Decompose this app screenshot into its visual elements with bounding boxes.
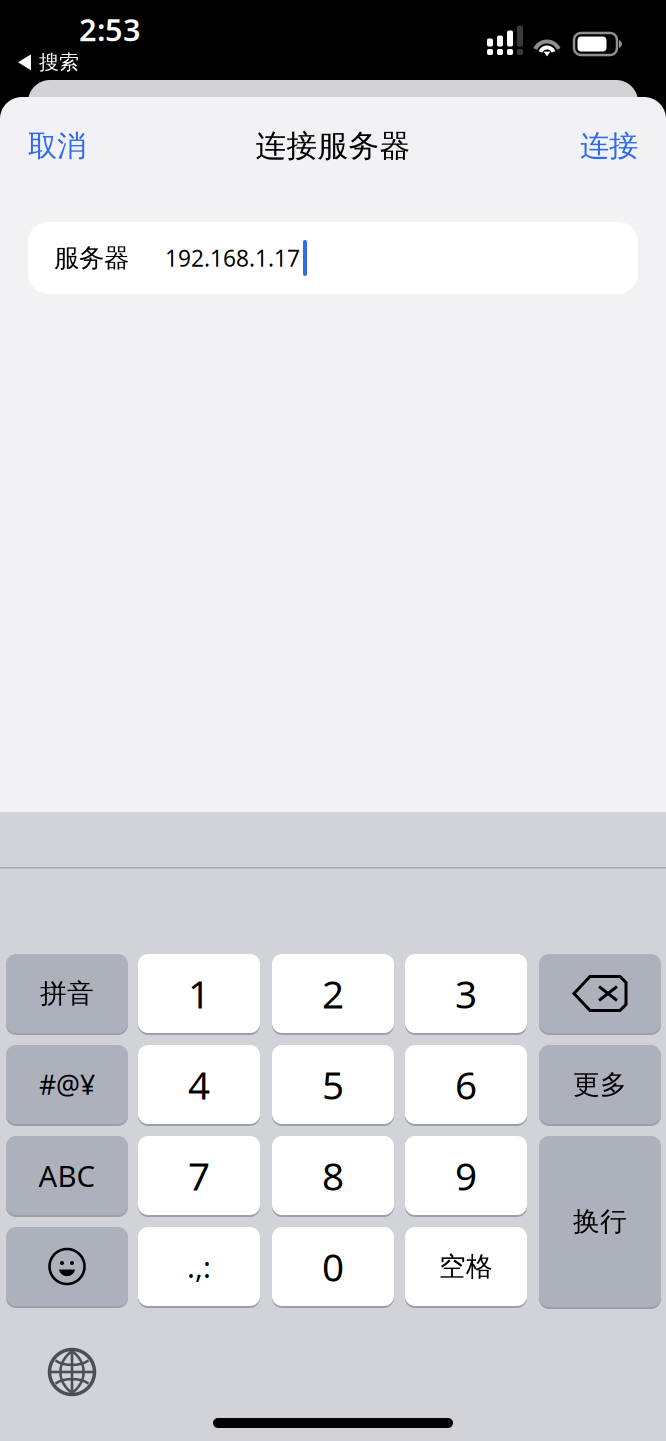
button[interactable]: 7 — [138, 1136, 260, 1217]
button[interactable]: 9 — [405, 1136, 527, 1217]
staticText: .,: — [187, 1247, 211, 1286]
button[interactable]: 空格 — [405, 1227, 527, 1308]
staticText: 0 — [322, 1241, 344, 1292]
button[interactable]: 拼音 — [6, 954, 128, 1035]
staticText: 连接服务器 — [255, 127, 410, 165]
staticText: 9 — [455, 1150, 477, 1201]
button[interactable]: 0 — [272, 1227, 394, 1308]
staticText: 搜索 — [39, 50, 79, 75]
staticText: ABC — [38, 1156, 95, 1195]
button[interactable]: 5 — [272, 1045, 394, 1126]
staticText: 192.168.1.17 — [165, 243, 300, 273]
staticText: 2 — [322, 968, 344, 1019]
staticText: 1 — [188, 968, 210, 1019]
staticText: 空格 — [439, 1250, 493, 1283]
button[interactable]: 8 — [272, 1136, 394, 1217]
button[interactable]: 取消 — [0, 109, 138, 183]
staticText: 4 — [188, 1059, 210, 1110]
button[interactable]: 换行 — [539, 1136, 661, 1309]
staticText: 7 — [188, 1150, 210, 1201]
staticText: 8 — [322, 1150, 344, 1201]
button[interactable]: 6 — [405, 1045, 527, 1126]
button[interactable]: Switch keyboard — [22, 1322, 122, 1422]
button[interactable]: 4 — [138, 1045, 260, 1126]
staticText: 服务器 — [54, 242, 129, 273]
button[interactable]: #@¥ — [6, 1045, 128, 1126]
staticText: 2:53 — [79, 9, 141, 50]
button[interactable]: Delete — [539, 954, 661, 1035]
button[interactable]: 1 — [138, 954, 260, 1035]
button[interactable]: .,: — [138, 1227, 260, 1308]
staticText: 换行 — [573, 1205, 627, 1238]
staticText: 5 — [322, 1059, 344, 1110]
staticText: 连接 — [580, 128, 638, 164]
staticText: 更多 — [573, 1068, 627, 1101]
staticText: 6 — [455, 1059, 477, 1110]
staticText: 3 — [455, 968, 477, 1019]
button[interactable]: 2 — [272, 954, 394, 1035]
button[interactable]: 连接 — [528, 109, 666, 183]
staticText: 取消 — [28, 128, 86, 164]
staticText: #@¥ — [39, 1067, 95, 1102]
button[interactable]: 更多 — [539, 1045, 661, 1126]
staticText: 拼音 — [40, 977, 94, 1010]
button[interactable]: ABC — [6, 1136, 128, 1217]
button[interactable]: 3 — [405, 954, 527, 1035]
button[interactable]: Emoji — [6, 1227, 128, 1308]
